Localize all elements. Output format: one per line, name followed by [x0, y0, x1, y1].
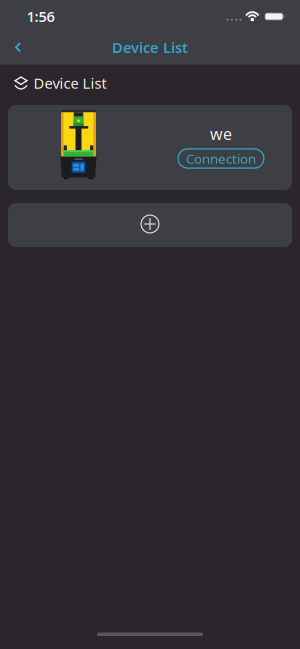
- staticText: Device List: [112, 37, 188, 57]
- staticText: 1:56: [26, 6, 54, 26]
- staticText: we: [210, 123, 232, 144]
- button[interactable]: Connection: [177, 148, 264, 169]
- button[interactable]: Add device: [8, 203, 292, 247]
- staticText: Device List: [33, 73, 106, 93]
- button[interactable]: Back: [0, 30, 21, 64]
- staticText: Connection: [186, 150, 256, 167]
